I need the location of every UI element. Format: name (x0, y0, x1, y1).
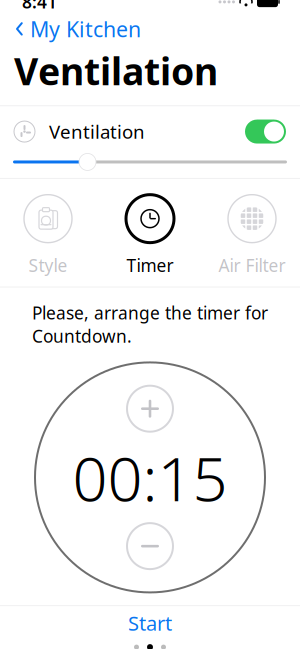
button[interactable]: My Kitchen (0, 14, 300, 44)
staticText: My Kitchen (30, 15, 141, 43)
staticText: Timer (126, 254, 173, 277)
button[interactable]: Decrease timer (124, 520, 176, 572)
staticText: Style (28, 254, 67, 277)
button[interactable]: Start (0, 606, 300, 640)
staticText: 8:41 (22, 0, 57, 13)
button[interactable]: Air Filter (208, 193, 296, 277)
button[interactable]: Ventilation power (245, 120, 286, 144)
staticText: Air Filter (218, 254, 285, 277)
button[interactable]: Increase timer (124, 383, 176, 435)
staticText: 00:15 (72, 437, 227, 518)
button[interactable]: Style (4, 193, 92, 277)
staticText: Ventilation (14, 46, 218, 95)
staticText: Please, arrange the timer for Countdown. (32, 301, 268, 347)
staticText: Ventilation (49, 119, 145, 144)
staticText: Start (128, 610, 172, 636)
button[interactable]: Timer (106, 193, 194, 277)
